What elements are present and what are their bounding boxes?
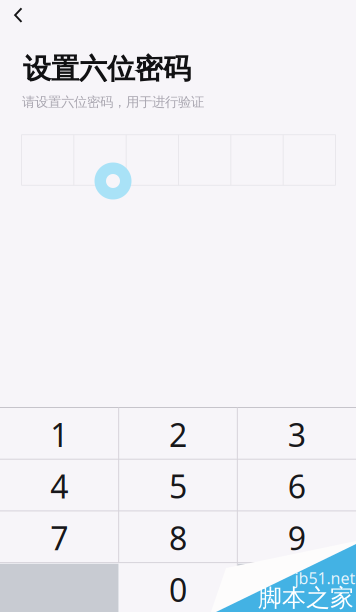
button[interactable]: 7 bbox=[0, 512, 119, 564]
button[interactable]: 1 bbox=[0, 409, 119, 460]
button[interactable]: Back bbox=[0, 0, 42, 30]
staticText: 1 bbox=[50, 413, 68, 456]
button[interactable]: 3 bbox=[237, 409, 356, 460]
button[interactable]: 6 bbox=[237, 460, 356, 512]
staticText: 2 bbox=[169, 413, 187, 456]
button[interactable]: 4 bbox=[0, 460, 119, 512]
button[interactable]: 2 bbox=[119, 409, 237, 460]
staticText: 5 bbox=[169, 465, 187, 507]
staticText: 7 bbox=[50, 517, 68, 559]
staticText: 6 bbox=[288, 465, 306, 507]
staticText: 4 bbox=[50, 465, 68, 507]
staticText: 9 bbox=[288, 517, 306, 559]
staticText: 请设置六位密码，用于进行验证 bbox=[22, 94, 204, 110]
button[interactable]: 5 bbox=[119, 460, 237, 512]
staticText: 设置六位密码 bbox=[23, 52, 191, 86]
staticText: 8 bbox=[169, 517, 187, 559]
button[interactable] bbox=[237, 564, 356, 612]
button[interactable]: 0 bbox=[119, 564, 237, 612]
button[interactable]: 9 bbox=[237, 512, 356, 564]
button[interactable]: 8 bbox=[119, 512, 237, 564]
staticText: 脚本之家 bbox=[258, 583, 354, 612]
staticText: 0 bbox=[169, 568, 187, 611]
staticText: 3 bbox=[288, 413, 306, 456]
staticText: jb51.net bbox=[294, 567, 355, 589]
